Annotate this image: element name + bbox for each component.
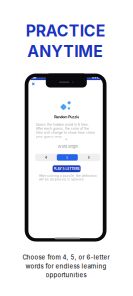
staticText: PLAY 5 LETTERS	[54, 167, 80, 171]
button[interactable]: PLAY 5 LETTERS	[53, 165, 81, 172]
staticText: opportunities	[45, 271, 86, 279]
button[interactable]: 4	[35, 154, 57, 161]
button[interactable]: 5	[57, 154, 78, 161]
staticText: PRACTICE	[26, 21, 106, 40]
staticText: 6	[88, 155, 90, 159]
staticText: 5	[66, 155, 68, 159]
button[interactable]: Close	[31, 82, 35, 86]
staticText: Random Puzzle	[54, 115, 79, 119]
staticText: Guess the hidden word in 6 tries. After …	[36, 123, 95, 138]
staticText: ANYTIME	[27, 42, 103, 61]
staticText: After solving a puzzle, the definition w…	[39, 174, 97, 181]
staticText: words for endless learning	[25, 263, 106, 270]
button[interactable]: 6	[78, 154, 99, 161]
staticText: Choose from 4, 5, or 6-letter	[22, 254, 109, 261]
staticText: 4	[45, 155, 47, 159]
staticText: Word length	[58, 144, 78, 149]
